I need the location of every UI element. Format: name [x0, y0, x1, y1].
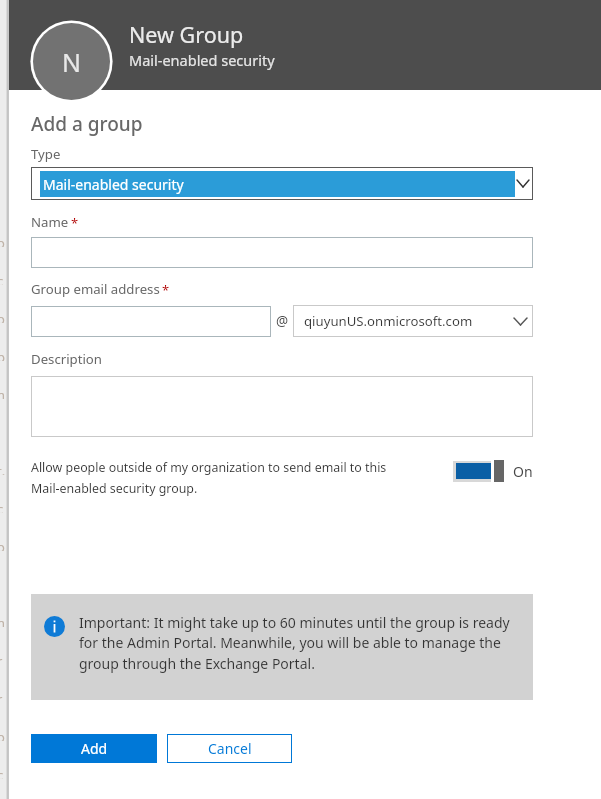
button[interactable]: [31, 376, 533, 437]
staticText: ni: [0, 614, 6, 627]
staticText: Allow people outside of my organization …: [31, 459, 403, 496]
staticText: New Group: [129, 20, 244, 49]
button[interactable]: [31, 237, 533, 268]
staticText: ni: [0, 386, 6, 399]
staticText: Important: It might take up to 60 minute…: [79, 613, 519, 674]
button[interactable]: Allow external senders toggle, On: [451, 460, 533, 483]
staticText: *: [162, 281, 170, 299]
staticText: qiuyunUS.onmicrosoft.com: [304, 312, 473, 330]
staticText: o: [0, 310, 5, 323]
staticText: t.: [0, 462, 6, 475]
staticText: Mail-enabled security: [129, 50, 275, 70]
button[interactable]: Cancel: [167, 734, 292, 763]
staticText: o: [0, 234, 5, 247]
staticText: Name: [31, 213, 69, 231]
staticText: @: [276, 312, 289, 330]
staticText: pi: [0, 348, 6, 361]
other: Information: [44, 613, 65, 638]
button[interactable]: Add: [31, 734, 157, 763]
staticText: Type: [31, 145, 61, 163]
staticText: cr: [0, 272, 6, 285]
button[interactable]: [31, 306, 271, 337]
staticText: os: [0, 728, 6, 741]
staticText: Cancel: [208, 739, 252, 758]
staticText: ro: [0, 652, 6, 665]
staticText: On: [513, 462, 533, 481]
staticText: o: [0, 538, 5, 551]
staticText: Add a group: [31, 111, 143, 137]
staticText: c: [0, 500, 4, 513]
other: Group avatar: [30, 20, 113, 103]
button[interactable]: qiuyunUS.onmicrosoft.com: [293, 305, 533, 337]
staticText: *: [71, 214, 79, 232]
button[interactable]: Mail-enabled security: [31, 167, 533, 200]
staticText: Add: [81, 739, 108, 758]
staticText: Description: [31, 350, 102, 368]
staticText: c: [0, 766, 4, 779]
staticText: r: [0, 690, 3, 703]
staticText: N: [62, 45, 82, 79]
staticText: Group email address: [31, 280, 160, 298]
staticText: Mail-enabled security: [43, 175, 184, 194]
